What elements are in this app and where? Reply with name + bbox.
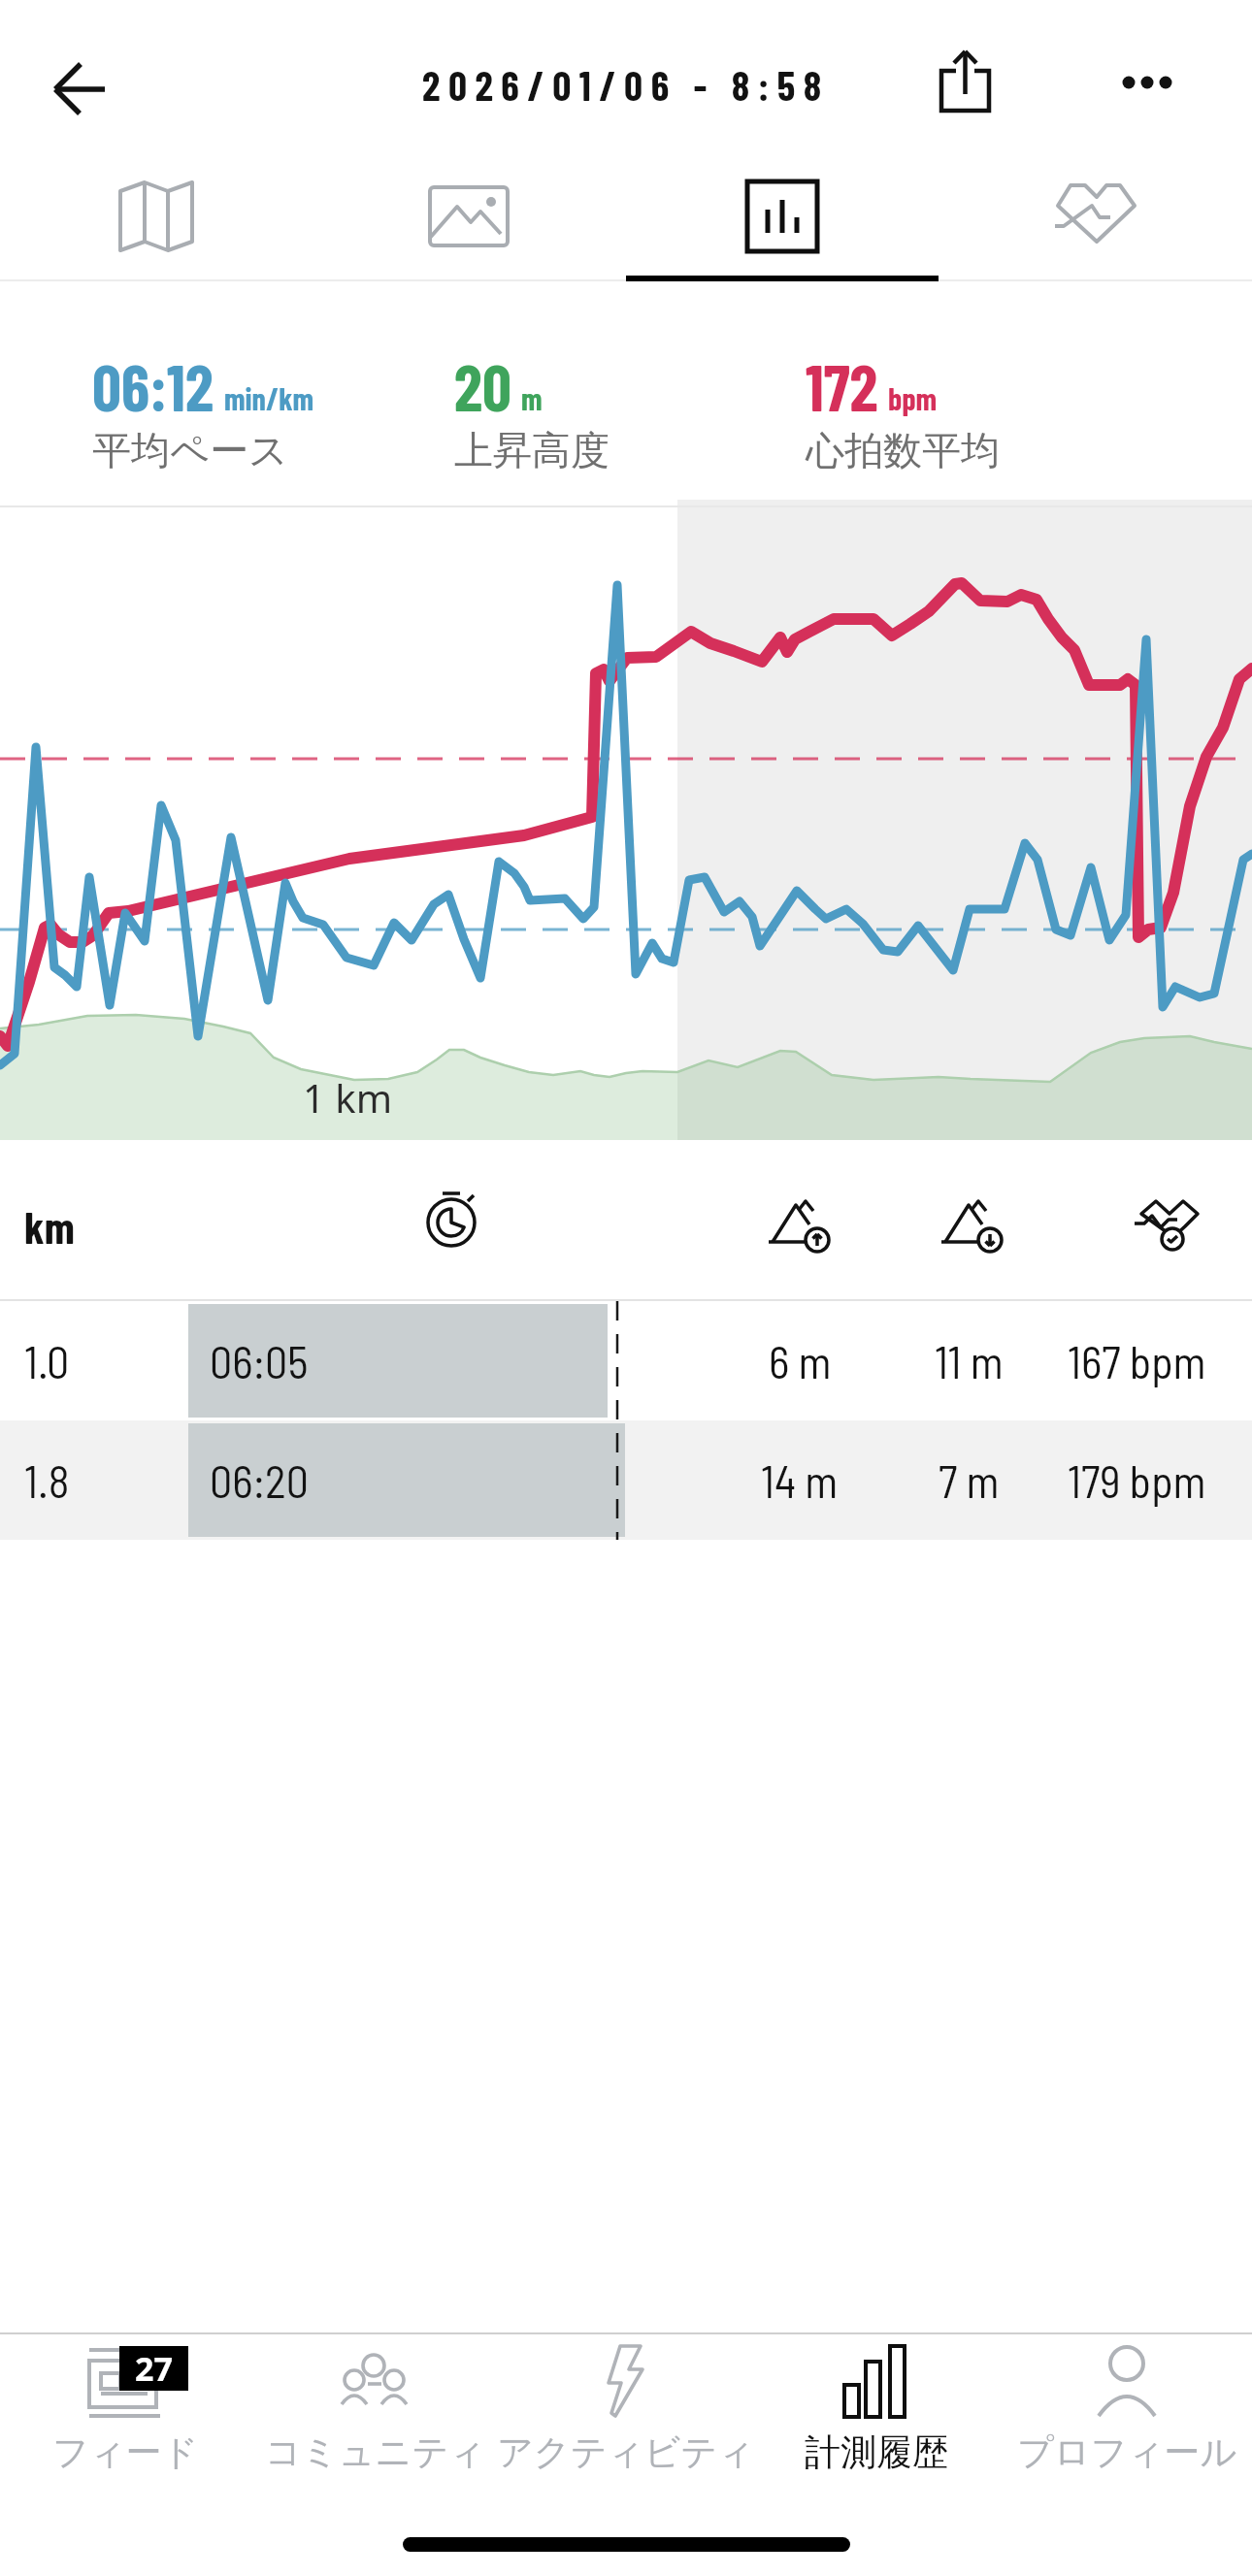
button[interactable] — [939, 155, 1252, 277]
button[interactable] — [0, 155, 313, 277]
staticText: アクティビティ — [497, 2429, 755, 2475]
button[interactable]: 1.8 — [0, 1420, 1252, 1540]
staticText: bpm — [888, 379, 938, 416]
button[interactable] — [751, 2334, 1002, 2490]
staticText: 179 bpm — [1068, 1453, 1206, 1507]
button[interactable] — [917, 39, 1014, 126]
staticText: 06:05 — [210, 1334, 309, 1387]
staticText: 2026/01/06 - 8:58 — [422, 60, 830, 109]
staticText: 1.0 — [24, 1334, 70, 1387]
staticText: 心拍数平均 — [806, 426, 1000, 474]
staticText: 14 m — [761, 1453, 839, 1507]
staticText: フィード — [52, 2429, 199, 2475]
button[interactable]: 1.0 — [0, 1301, 1252, 1420]
staticText: コミュニティ — [265, 2429, 486, 2475]
button[interactable] — [625, 155, 939, 277]
staticText: 1.8 — [24, 1453, 70, 1507]
staticText: 27 — [135, 2346, 173, 2391]
staticText: 06:20 — [210, 1453, 309, 1507]
button[interactable] — [29, 50, 126, 128]
staticText: 06:12 — [92, 347, 214, 424]
button[interactable] — [0, 2334, 250, 2490]
staticText: m — [521, 379, 543, 416]
staticText: km — [24, 1199, 75, 1253]
button[interactable] — [250, 2334, 501, 2490]
staticText: 6 m — [769, 1334, 832, 1387]
button[interactable] — [1002, 2334, 1252, 2490]
staticText: min/km — [224, 379, 314, 416]
button[interactable] — [501, 2334, 751, 2490]
button[interactable] — [313, 155, 625, 277]
staticText: 172 — [806, 347, 878, 424]
staticText: 上昇高度 — [454, 426, 610, 474]
button[interactable] — [1111, 58, 1189, 107]
staticText: 計測履歴 — [805, 2429, 948, 2475]
staticText: 平均ペース — [92, 426, 288, 474]
staticText: 1 km — [303, 1071, 393, 1124]
staticText: 20 — [454, 347, 511, 424]
staticText: プロフィール — [1017, 2429, 1237, 2475]
staticText: 7 m — [939, 1453, 1000, 1507]
staticText: 167 bpm — [1068, 1334, 1206, 1387]
staticText: 11 m — [935, 1334, 1004, 1387]
